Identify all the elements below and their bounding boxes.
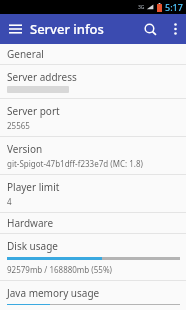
- staticText: Server port: [7, 104, 60, 118]
- staticText: Player limit: [7, 180, 60, 194]
- staticText: 5:17: [165, 1, 183, 13]
- staticText: 92579mb / 168880mb (55%): [7, 264, 112, 275]
- button[interactable]: Open navigation drawer: [0, 14, 30, 44]
- staticText: 3G: [138, 4, 145, 11]
- staticText: Java memory usage: [7, 286, 100, 300]
- button[interactable]: Server address: [0, 65, 186, 98]
- button[interactable]: Java memory usage: [0, 281, 186, 310]
- staticText: 4: [7, 196, 12, 207]
- staticText: General: [7, 47, 44, 61]
- button[interactable]: Server port: [0, 99, 186, 136]
- button[interactable]: Player limit: [0, 175, 186, 212]
- staticText: Server address: [7, 70, 77, 84]
- staticText: Server infos: [30, 20, 136, 38]
- staticText: Version: [7, 142, 43, 156]
- staticText: Hardware: [7, 216, 54, 230]
- staticText: git-Spigot-47b1dff-f233e7d (MC: 1.8): [7, 158, 143, 169]
- button[interactable]: Version: [0, 137, 186, 174]
- button[interactable]: More options: [164, 18, 186, 40]
- button[interactable]: Search: [136, 15, 164, 43]
- staticText: Disk usage: [7, 239, 58, 253]
- button[interactable]: Disk usage: [0, 234, 186, 280]
- staticText: 25565: [7, 120, 30, 131]
